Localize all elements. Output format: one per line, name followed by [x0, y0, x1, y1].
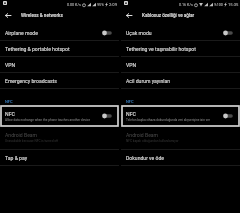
staticText: 15:35 — [228, 2, 239, 7]
button[interactable]: Android Beam — [121, 126, 240, 149]
button[interactable]: VPN — [0, 57, 119, 72]
staticText: Tap & pay — [5, 155, 112, 161]
staticText: Android Beam — [5, 132, 38, 138]
button[interactable]: Tap & pay — [0, 150, 119, 165]
button[interactable]: NFC — [122, 106, 239, 126]
button[interactable]: NFC — [1, 106, 118, 126]
staticText: Airplane mode — [5, 30, 102, 36]
staticText: 0.16 K/s — [179, 3, 193, 7]
staticText: 0.00 K/s — [67, 3, 81, 7]
button[interactable]: Airplane mode — [0, 25, 119, 40]
button[interactable]: Acil durum yayınları — [121, 73, 240, 88]
button[interactable]: Back — [3, 10, 13, 20]
button[interactable]: Uçak modu — [121, 25, 240, 40]
staticText: Kablosuz özelliği ve ağlar — [142, 13, 195, 18]
button[interactable]: Tethering ve taşınabilir hotspot — [121, 41, 240, 56]
button[interactable]: Emergency broadcasts — [0, 73, 119, 88]
button[interactable]: Tethering & portable hotspot — [0, 41, 119, 56]
button[interactable]: Back — [124, 10, 134, 20]
staticText: Wireless & networks — [21, 13, 63, 18]
staticText: Dokundur ve öde — [126, 155, 233, 161]
staticText: Unavailable because NFC is turned off — [5, 139, 59, 143]
staticText: Android Beam — [126, 132, 159, 138]
staticText: NFC — [5, 111, 15, 117]
staticText: VPN — [126, 62, 233, 68]
button[interactable]: Android Beam — [0, 126, 119, 149]
staticText: 2:09 — [109, 2, 118, 7]
staticText: 95% — [97, 3, 104, 7]
staticText: %100 — [214, 3, 223, 7]
staticText: Tethering & portable hotspot — [5, 46, 112, 52]
button[interactable]: VPN — [121, 57, 240, 72]
staticText: Uçak modu — [126, 30, 223, 36]
staticText: NFC kapalı olduğundan kullanılamıyor — [126, 139, 179, 143]
staticText: Acil durum yayınları — [126, 78, 233, 84]
staticText: Emergency broadcasts — [5, 78, 112, 84]
staticText: Allow data exchange when the phone touch… — [5, 118, 91, 122]
staticText: Telefon başka cihaza dokunduğunda veri a… — [126, 118, 210, 122]
staticText: NFC — [126, 111, 136, 117]
staticText: NFC — [126, 99, 134, 104]
staticText: NFC — [5, 99, 13, 104]
staticText: VPN — [5, 62, 112, 68]
staticText: Tethering ve taşınabilir hotspot — [126, 46, 233, 52]
button[interactable]: Dokundur ve öde — [121, 150, 240, 165]
